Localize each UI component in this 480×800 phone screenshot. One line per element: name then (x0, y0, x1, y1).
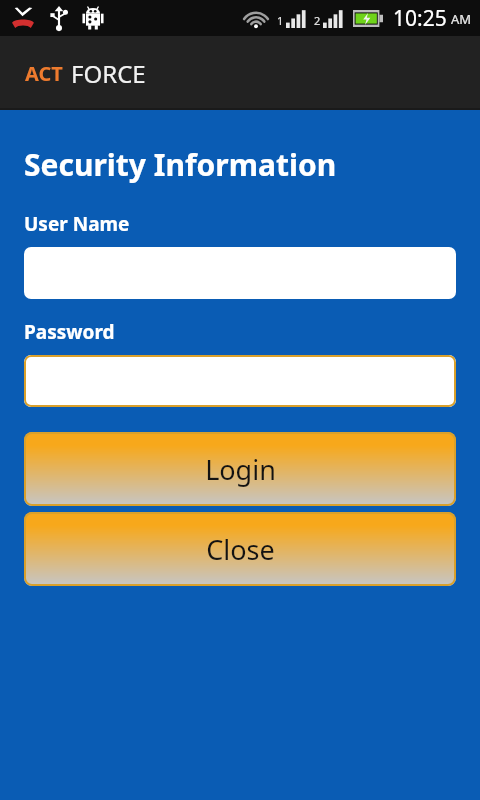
button[interactable] (24, 247, 456, 299)
staticText: Security Information (24, 144, 337, 185)
staticText: 2 (314, 13, 321, 28)
staticText: Password (24, 319, 115, 345)
button[interactable]: Login (24, 432, 456, 506)
staticText: AM (451, 10, 472, 28)
staticText: User Name (24, 211, 130, 237)
staticText: Close (206, 531, 275, 568)
staticText: Login (205, 451, 276, 488)
staticText: 10:25 (393, 4, 447, 33)
staticText: FORCE (71, 57, 146, 90)
button[interactable] (24, 355, 456, 407)
staticText: 1 (277, 13, 284, 28)
button[interactable]: Close (24, 512, 456, 586)
staticText: ACT (25, 60, 63, 87)
